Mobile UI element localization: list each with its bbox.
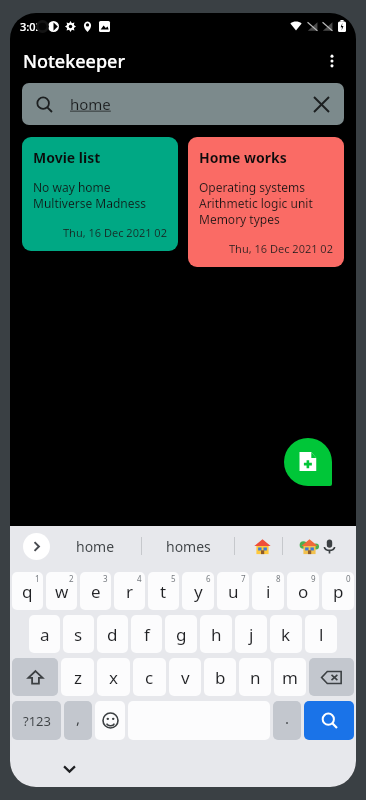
staticText: a [40, 623, 50, 646]
staticText: . [285, 708, 290, 728]
button[interactable]: . [273, 701, 301, 740]
button[interactable]: Home works [188, 137, 344, 267]
button[interactable]: c [133, 658, 166, 696]
button[interactable]: y [182, 572, 214, 610]
staticText: g [176, 623, 187, 646]
staticText: w [55, 580, 69, 603]
button[interactable]: , [64, 701, 92, 740]
staticText: Notekeeper [23, 49, 126, 74]
button[interactable]: More suggestions [23, 533, 50, 560]
button[interactable]: j [235, 615, 267, 653]
staticText: No way home [33, 179, 111, 195]
staticText: s [74, 623, 83, 646]
staticText: e [91, 580, 101, 603]
button[interactable]: i [252, 572, 284, 610]
button[interactable]: House with garden emoji [300, 537, 319, 556]
staticText: , [76, 708, 81, 728]
staticText: Multiverse Madness [33, 195, 146, 211]
button[interactable]: v [169, 658, 201, 696]
staticText: 8 [276, 573, 281, 584]
staticText: d [107, 623, 118, 646]
staticText: l [319, 623, 324, 646]
staticText: Home works [199, 148, 287, 167]
button[interactable]: e [80, 572, 111, 610]
button[interactable]: homes [166, 537, 211, 556]
staticText: Movie list [33, 148, 101, 167]
button[interactable]: Shift [12, 658, 58, 696]
staticText: 4 [137, 573, 142, 584]
button[interactable]: s [63, 615, 94, 653]
staticText: b [215, 666, 226, 689]
button[interactable]: ?123 [12, 701, 61, 740]
staticText: 3 [103, 573, 108, 584]
button[interactable]: More options [312, 41, 352, 81]
staticText: 7 [241, 573, 246, 584]
staticText: m [282, 666, 298, 689]
staticText: Thu, 16 Dec 2021 02 [63, 225, 167, 240]
button[interactable]: f [131, 615, 162, 653]
button[interactable]: Clear search [304, 87, 338, 121]
staticText: 3:02 [20, 19, 42, 34]
staticText: Operating systems [199, 179, 305, 195]
button[interactable]: Emoji [95, 701, 125, 740]
staticText: 9 [311, 573, 316, 584]
staticText: 5 [171, 573, 176, 584]
staticText: Thu, 16 Dec 2021 02 [229, 241, 333, 256]
button[interactable]: b [204, 658, 236, 696]
button[interactable]: x [97, 658, 130, 696]
staticText: 1 [35, 573, 40, 584]
button[interactable]: Hide keyboard [52, 751, 86, 785]
button[interactable]: p [322, 572, 354, 610]
button[interactable]: n [239, 658, 271, 696]
staticText: h [211, 623, 222, 646]
staticText: y [194, 580, 203, 603]
staticText: k [281, 623, 291, 646]
button[interactable]: r [114, 572, 145, 610]
staticText: i [266, 580, 271, 603]
staticText: 2 [69, 573, 74, 584]
button[interactable]: q [12, 572, 43, 610]
button[interactable]: Search [304, 701, 354, 740]
staticText: ?123 [23, 712, 51, 730]
button[interactable]: Voice input [315, 532, 343, 560]
button[interactable]: d [97, 615, 128, 653]
button[interactable]: z [61, 658, 94, 696]
button[interactable]: House emoji [253, 537, 272, 556]
button[interactable]: m [274, 658, 306, 696]
staticText: 0 [346, 573, 351, 584]
button[interactable]: h [200, 615, 232, 653]
staticText: f [144, 623, 150, 646]
staticText: x [109, 666, 118, 689]
button[interactable]: w [46, 572, 77, 610]
staticText: o [298, 580, 309, 603]
button[interactable]: l [305, 615, 337, 653]
staticText: p [333, 580, 344, 603]
staticText: j [249, 623, 254, 646]
staticText: q [22, 580, 33, 603]
button[interactable]: k [270, 615, 302, 653]
button[interactable]: home [76, 537, 115, 556]
staticText: u [228, 580, 239, 603]
staticText: v [181, 666, 190, 689]
button[interactable]: g [165, 615, 197, 653]
button[interactable]: a [29, 615, 60, 653]
staticText: 6 [206, 573, 211, 584]
button[interactable]: Movie list [22, 137, 178, 251]
staticText: Memory types [199, 211, 280, 227]
staticText: z [74, 666, 82, 689]
staticText: c [145, 666, 154, 689]
staticText: Arithmetic logic unit [199, 195, 313, 211]
staticText: r [126, 580, 134, 603]
staticText: t [160, 580, 167, 603]
button[interactable]: New note [284, 438, 332, 486]
button[interactable]: t [148, 572, 179, 610]
button[interactable]: u [217, 572, 249, 610]
staticText: n [250, 666, 261, 689]
button[interactable]: Backspace [309, 658, 354, 696]
button[interactable]: o [287, 572, 319, 610]
button[interactable]: home [22, 83, 344, 125]
staticText: home [70, 94, 111, 114]
